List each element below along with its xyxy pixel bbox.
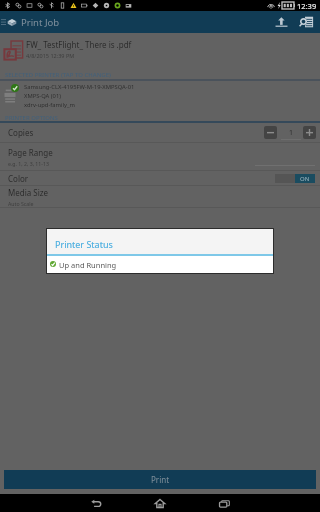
button[interactable]: Color on [275,174,315,183]
staticText: Samsung-CLX-4195FW-M-19-XMPSQA-01 [24,83,135,91]
staticText: XMPS-QA (01) [24,92,61,100]
staticText: Up and Running [59,260,117,270]
button[interactable]: Increase copies [303,126,316,139]
staticText: Color [8,173,29,184]
button[interactable]: Media Size [0,186,320,207]
staticText: 1 [289,128,294,138]
staticText: 12:39 [297,1,317,11]
staticText: Print Job [21,16,60,29]
button[interactable]: Print [4,470,316,489]
button[interactable]: Recent apps [192,494,256,512]
button[interactable]: Home [128,494,192,512]
staticText: Page Range [8,147,53,158]
button[interactable]: Open navigation menu [0,11,6,33]
staticText: Print [151,474,170,485]
staticText: Printer Status [55,238,113,250]
staticText: PRINTER OPTIONS [5,114,58,121]
staticText: Copies [8,127,34,138]
staticText: SELECTED PRINTER (TAP TO CHANGE) [5,71,111,79]
staticText: 4/8/2015 12:39 PM [26,52,75,59]
button[interactable]: Back [64,494,128,512]
staticText: e.g. 1, 2, 3, 11-13 [8,160,49,167]
staticText: xdrv-upd-family_m [24,101,75,109]
staticText: ON [300,175,310,183]
staticText: Media Size [8,187,49,198]
staticText: Auto Scale [8,200,34,207]
staticText: FW_ TestFlight_ There is .pdf [26,39,132,50]
button[interactable]: Find printer [295,11,317,33]
button[interactable]: FW_ TestFlight_ There is .pdf [0,33,320,68]
button[interactable]: Samsung-CLX-4195FW-M-19-XMPSQA-01 [0,81,320,113]
button[interactable]: Decrease copies [264,126,277,139]
button[interactable]: Upload [270,11,292,33]
button[interactable]: Page range input [255,148,315,166]
